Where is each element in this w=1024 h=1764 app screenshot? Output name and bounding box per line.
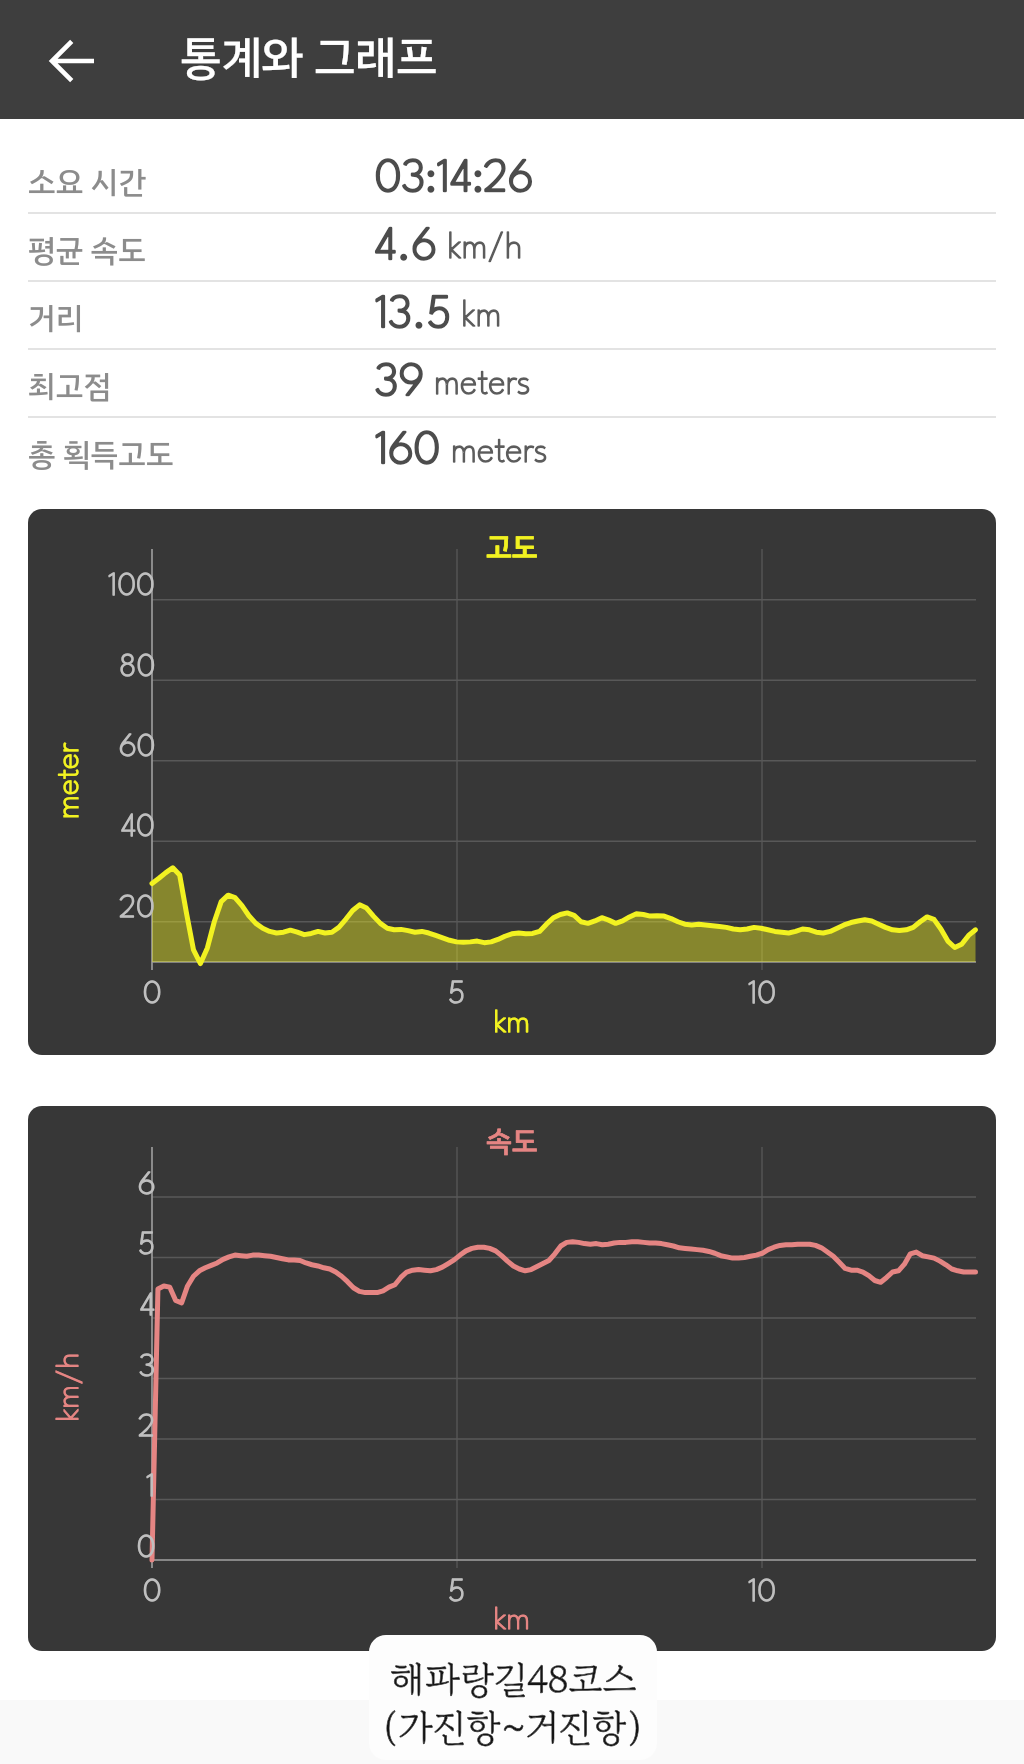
- staticText: 3: [139, 1353, 156, 1383]
- staticText: 0: [137, 1534, 156, 1564]
- button[interactable]: 100: [28, 509, 996, 1055]
- staticText: km: [494, 1008, 531, 1039]
- staticText: 1: [146, 1473, 156, 1503]
- staticText: 100: [108, 572, 156, 602]
- staticText: 0: [143, 980, 162, 1010]
- staticText: 2: [138, 1413, 156, 1443]
- staticText: 평균 속도: [28, 227, 146, 274]
- staticText: 20: [119, 894, 156, 924]
- staticText: meters: [451, 436, 548, 470]
- staticText: 속도: [486, 1120, 538, 1164]
- staticText: km: [462, 300, 502, 334]
- staticText: 0: [137, 1534, 156, 1564]
- staticText: 4: [140, 1292, 156, 1322]
- staticText: 통계와 그래프: [180, 23, 438, 92]
- staticText: 10: [748, 1578, 777, 1608]
- staticText: 해파랑길48코스: [390, 1651, 637, 1706]
- staticText: meters: [434, 368, 531, 402]
- staticText: 03:14:26: [375, 158, 534, 201]
- staticText: 10: [748, 980, 777, 1010]
- staticText: (가진항~거진항): [383, 1699, 643, 1754]
- staticText: 80: [119, 653, 156, 683]
- staticText: 20: [119, 894, 156, 924]
- staticText: 160: [375, 430, 441, 473]
- staticText: 03:14:26: [375, 158, 534, 201]
- staticText: 고도: [486, 526, 538, 570]
- staticText: km: [462, 300, 502, 334]
- staticText: 5: [448, 980, 466, 1010]
- staticText: 60: [119, 733, 156, 763]
- staticText: 13.5: [375, 294, 452, 337]
- staticText: 39: [375, 362, 424, 405]
- staticText: 최고점: [28, 363, 111, 410]
- staticText: 5: [448, 980, 466, 1010]
- staticText: meter: [54, 742, 85, 819]
- staticText: 10: [748, 1578, 777, 1608]
- staticText: 10: [748, 980, 777, 1010]
- staticText: km/h: [54, 1352, 85, 1421]
- staticText: 4.6: [375, 226, 438, 269]
- staticText: 1: [146, 1473, 156, 1503]
- staticText: meter: [54, 742, 85, 819]
- staticText: 40: [121, 813, 156, 843]
- staticText: km: [494, 1605, 531, 1636]
- staticText: 거리: [28, 295, 84, 342]
- staticText: km: [494, 1008, 531, 1039]
- staticText: 4.6: [375, 226, 438, 269]
- button[interactable]: 거리: [0, 282, 1024, 350]
- staticText: 60: [119, 733, 156, 763]
- button[interactable]: 해파랑길48코스: [369, 1635, 657, 1760]
- staticText: 5: [138, 1231, 156, 1261]
- staticText: 3: [139, 1353, 156, 1383]
- button[interactable]: 소요 시간: [0, 146, 1024, 214]
- staticText: 해파랑길48코스: [390, 1651, 637, 1706]
- staticText: 0: [143, 980, 162, 1010]
- staticText: km/h: [448, 232, 523, 266]
- staticText: 39: [375, 362, 424, 405]
- staticText: 고도: [486, 526, 538, 570]
- staticText: 4: [140, 1292, 156, 1322]
- staticText: meters: [434, 368, 531, 402]
- staticText: 80: [119, 653, 156, 683]
- button[interactable]: 6: [28, 1106, 996, 1651]
- button[interactable]: 평균 속도: [0, 214, 1024, 282]
- staticText: 160: [375, 430, 441, 473]
- staticText: 소요 시간: [28, 159, 146, 206]
- staticText: km/h: [54, 1352, 85, 1421]
- staticText: 5: [448, 1578, 466, 1608]
- staticText: 13.5: [375, 294, 452, 337]
- staticText: km/h: [448, 232, 523, 266]
- staticText: meters: [451, 436, 548, 470]
- staticText: 5: [138, 1231, 156, 1261]
- staticText: 0: [143, 1578, 162, 1608]
- staticText: 0: [143, 1578, 162, 1608]
- staticText: 6: [138, 1171, 156, 1201]
- staticText: 100: [108, 572, 156, 602]
- button[interactable]: 총 획득고도: [0, 418, 1024, 486]
- staticText: 총 획득고도: [28, 431, 174, 478]
- staticText: (가진항~거진항): [383, 1699, 643, 1754]
- button[interactable]: 최고점: [0, 350, 1024, 418]
- staticText: 5: [448, 1578, 466, 1608]
- staticText: 2: [138, 1413, 156, 1443]
- staticText: km: [494, 1605, 531, 1636]
- button[interactable]: Back: [25, 13, 121, 109]
- staticText: 6: [138, 1171, 156, 1201]
- staticText: 40: [121, 813, 156, 843]
- staticText: 속도: [486, 1120, 538, 1164]
